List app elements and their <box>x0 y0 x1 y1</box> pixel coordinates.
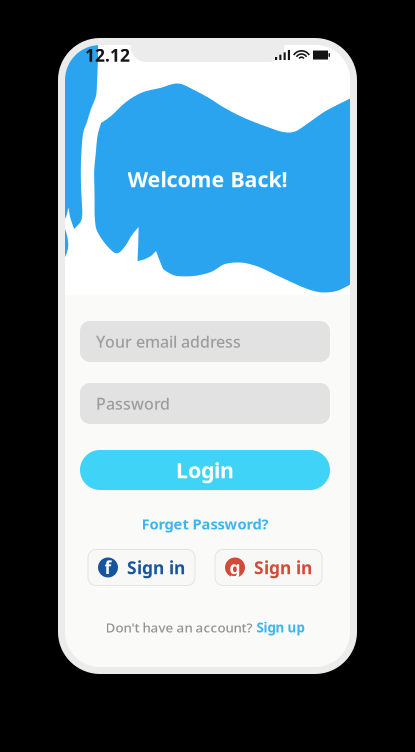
staticText: Welcome Back! <box>127 165 287 193</box>
button[interactable]: Login <box>80 450 330 490</box>
staticText: g <box>229 556 240 579</box>
button[interactable]: Forget Password? <box>133 510 276 537</box>
staticText: Sign in <box>254 556 312 579</box>
button[interactable]: Sign up <box>256 618 304 636</box>
button[interactable]: g <box>215 549 322 585</box>
staticText: Forget Password? <box>141 514 268 533</box>
staticText: Sign in <box>127 556 185 579</box>
staticText: Don't have an account? <box>105 618 252 636</box>
staticText: Your email address <box>96 331 241 352</box>
button[interactable]: f <box>88 549 195 585</box>
staticText: f <box>104 556 111 579</box>
staticText: 12.12 <box>85 43 130 66</box>
staticText: Sign up <box>256 618 304 636</box>
staticText: Login <box>176 456 234 484</box>
staticText: Password <box>96 393 170 414</box>
